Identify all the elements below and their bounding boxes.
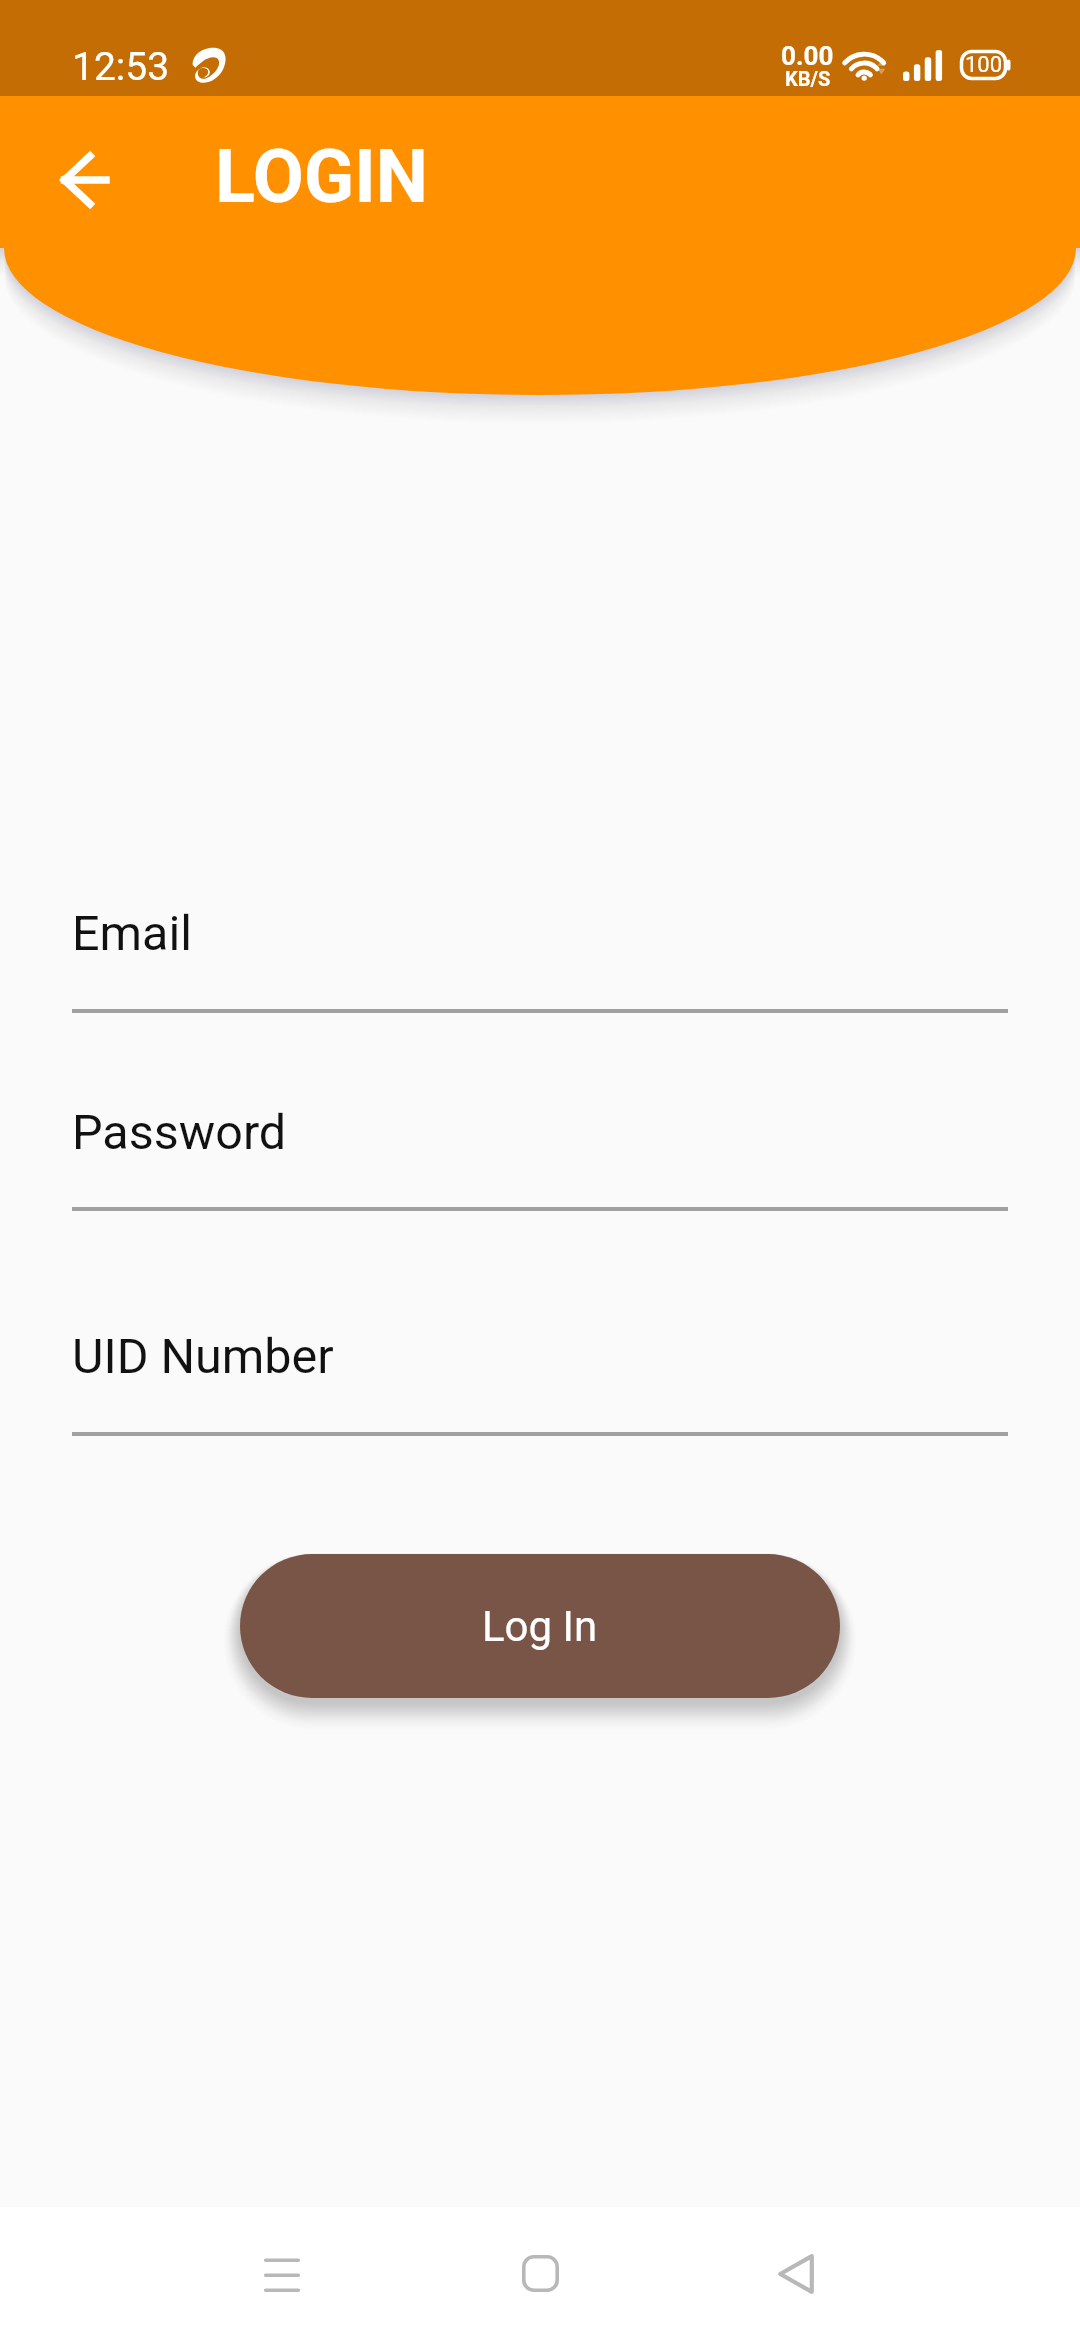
- button[interactable]: Back: [748, 2207, 844, 2340]
- button[interactable]: Password: [72, 1104, 1008, 1227]
- button[interactable]: Home: [492, 2207, 588, 2340]
- staticText: 100: [965, 52, 1003, 78]
- staticText: KB/S: [785, 67, 831, 90]
- staticText: UID Number: [72, 1328, 334, 1385]
- button[interactable]: Back: [39, 132, 135, 228]
- button[interactable]: Recent apps: [234, 2207, 330, 2340]
- staticText: Log In: [482, 1602, 598, 1651]
- button[interactable]: Log In: [240, 1554, 840, 1698]
- staticText: LOGIN: [215, 133, 429, 220]
- button[interactable]: Email: [72, 905, 1008, 1029]
- staticText: Password: [72, 1104, 287, 1161]
- button[interactable]: UID Number: [72, 1328, 1008, 1452]
- staticText: 12:53: [72, 44, 170, 90]
- staticText: 0.00: [781, 41, 834, 71]
- staticText: Email: [72, 905, 193, 962]
